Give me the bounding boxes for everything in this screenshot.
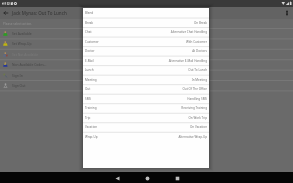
- staticText: Blend: [85, 11, 94, 15]
- staticText: Alternative Wrap-Up: [100, 135, 207, 139]
- button[interactable]: Meeting: [83, 75, 209, 85]
- staticText: Break: [85, 21, 94, 25]
- staticText: In Meeting: [99, 78, 207, 82]
- button[interactable]: Blend: [83, 8, 209, 18]
- button[interactable]: Navigate up: [0, 7, 12, 19]
- staticText: Receiving Training: [99, 106, 207, 110]
- button[interactable]: Set Available: [0, 28, 293, 38]
- staticText: Alternative Chat Handling: [94, 30, 207, 34]
- button[interactable]: Break: [83, 18, 209, 28]
- staticText: Sign Out: [12, 83, 26, 87]
- staticText: Wrap-Up: [85, 135, 98, 139]
- staticText: Set Available: [12, 31, 32, 35]
- staticText: At Doctors: [97, 49, 207, 53]
- button[interactable]: SMS: [83, 94, 209, 104]
- staticText: On Work Trip: [93, 116, 207, 120]
- button[interactable]: Non Available Codes...: [0, 59, 293, 69]
- button[interactable]: Back: [102, 172, 132, 183]
- button[interactable]: Doctor: [83, 46, 209, 56]
- staticText: Lunch: [85, 68, 94, 72]
- staticText: Please select action.: [3, 22, 33, 26]
- staticText: Trip: [85, 116, 91, 120]
- button[interactable]: Set Not Available: [0, 49, 293, 59]
- button[interactable]: More options: [281, 7, 293, 19]
- button[interactable]: Out: [83, 84, 209, 94]
- button[interactable]: Trip: [83, 113, 209, 123]
- staticText: Out: [85, 87, 91, 91]
- staticText: Handling SMS: [94, 97, 207, 101]
- button[interactable]: Training: [83, 103, 209, 113]
- staticText: Non Available Codes...: [12, 62, 47, 66]
- staticText: Vacation: [85, 125, 98, 129]
- staticText: Doctor: [85, 49, 95, 53]
- staticText: With Customer: [101, 40, 207, 44]
- button[interactable]: Recent apps: [162, 172, 192, 183]
- button[interactable]: E-Mail: [83, 56, 209, 66]
- button[interactable]: Chat: [83, 27, 209, 37]
- button[interactable]: Sign In: [0, 70, 293, 80]
- staticText: Training: [85, 106, 97, 110]
- button[interactable]: Sign Out: [0, 80, 293, 90]
- button[interactable]: Wrap-Up: [83, 132, 209, 142]
- staticText: Sign In: [12, 73, 23, 77]
- staticText: On Break: [96, 21, 207, 25]
- staticText: Meeting: [85, 78, 97, 82]
- staticText: Jack Mynas: Out To Lunch: [12, 10, 67, 16]
- button[interactable]: Vacation: [83, 122, 209, 132]
- button[interactable]: Lunch: [83, 65, 209, 75]
- button[interactable]: Customer: [83, 37, 209, 47]
- staticText: Out Of The Office: [93, 87, 207, 91]
- staticText: Set Not Available: [12, 52, 39, 56]
- button[interactable]: Home: [132, 172, 162, 183]
- staticText: SMS: [85, 97, 92, 101]
- staticText: On Vacation: [100, 125, 207, 129]
- staticText: Set Wrap-Up: [12, 41, 32, 45]
- button[interactable]: Set Wrap-Up: [0, 38, 293, 48]
- staticText: Out To Lunch: [96, 68, 207, 72]
- staticText: Alternative E-Mail Handling: [96, 59, 207, 63]
- staticText: Customer: [85, 40, 99, 44]
- staticText: E-Mail: [85, 59, 94, 63]
- staticText: Chat: [85, 30, 92, 34]
